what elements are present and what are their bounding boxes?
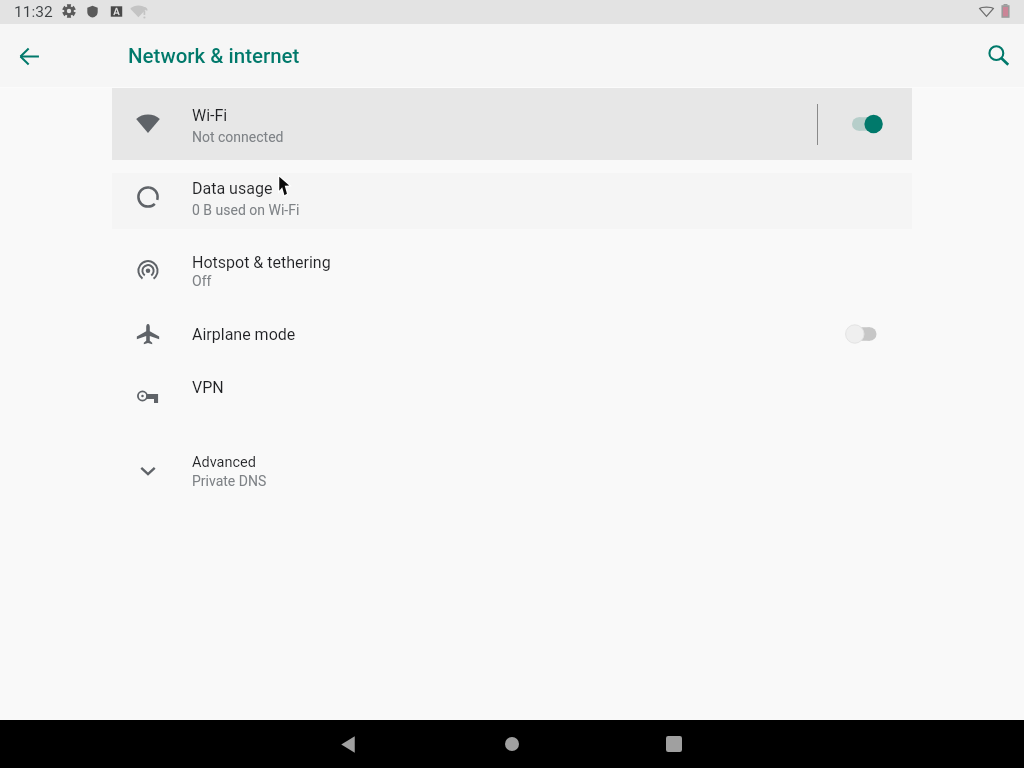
button[interactable]: Airplane mode <box>112 310 912 358</box>
staticText: Not connected <box>192 129 284 145</box>
staticText: VPN <box>192 378 224 397</box>
staticText: Airplane mode <box>192 325 296 344</box>
staticText: 11:32 <box>14 3 53 21</box>
button[interactable]: VPN <box>112 366 912 414</box>
button[interactable]: Recents <box>650 720 698 768</box>
button[interactable]: Advanced <box>112 440 912 502</box>
button[interactable]: Hotspot & tethering <box>112 240 912 304</box>
staticText: Data usage <box>192 179 273 198</box>
button[interactable]: Data usage <box>112 173 912 229</box>
button[interactable]: Search <box>979 36 1019 76</box>
staticText: Hotspot & tethering <box>192 253 331 272</box>
staticText: Advanced <box>192 454 256 471</box>
button[interactable]: Wi-Fi <box>112 88 912 160</box>
staticText: Private DNS <box>192 473 267 489</box>
staticText: Wi-Fi <box>192 106 228 125</box>
button[interactable]: Wi-Fi on/off toggle <box>840 108 888 140</box>
button[interactable]: Back <box>324 720 372 768</box>
button[interactable]: Home <box>488 720 536 768</box>
staticText: Off <box>192 273 212 289</box>
staticText: 0 B used on Wi-Fi <box>192 202 300 218</box>
button[interactable]: Airplane mode on/off toggle <box>840 318 888 350</box>
staticText: Network & internet <box>128 44 300 68</box>
button[interactable]: Back <box>9 36 49 76</box>
